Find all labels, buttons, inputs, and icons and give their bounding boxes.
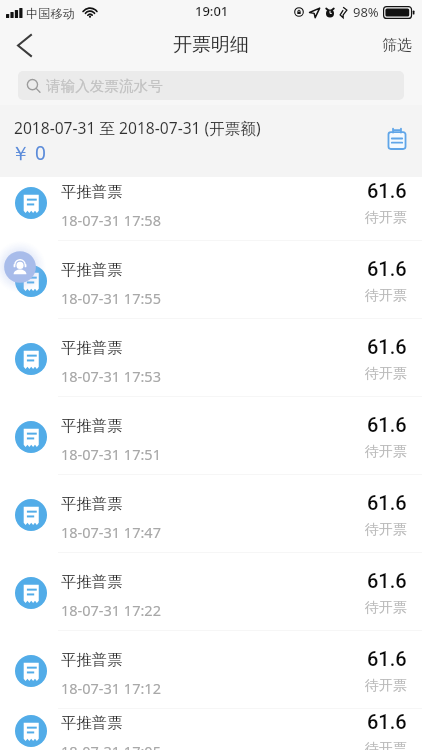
button[interactable]: 平推普票 [0,163,422,240]
staticText: 18-07-31 17:22 [61,600,161,620]
staticText: 61.6 [367,491,407,514]
staticText: 18-07-31 17:05 [61,741,161,750]
staticText: 61.6 [367,647,407,670]
staticText: 平推普票 [61,260,123,279]
staticText: 18-07-31 17:51 [61,444,161,464]
staticText: 18-07-31 17:53 [61,366,161,386]
staticText: 61.6 [367,413,407,436]
button[interactable]: 平推普票 [0,397,422,474]
staticText: 平推普票 [61,338,123,357]
staticText: 61.6 [367,257,407,280]
button[interactable]: 平推普票 [0,319,422,396]
button[interactable]: 平推普票 [0,553,422,630]
staticText: ￥ 0 [11,140,46,166]
staticText: 待开票 [365,599,407,617]
staticText: 待开票 [365,209,407,227]
staticText: 19:01 [195,2,229,20]
staticText: 平推普票 [61,713,123,732]
staticText: 平推普票 [61,572,123,591]
staticText: 待开票 [365,287,407,305]
button[interactable]: 平推普票 [0,241,422,318]
staticText: 待开票 [365,365,407,383]
staticText: 18-07-31 17:47 [61,522,161,542]
staticText: 平推普票 [61,182,123,201]
staticText: 筛选 [382,36,412,55]
staticText: 待开票 [365,521,407,539]
staticText: 中国移动 [26,6,75,21]
button[interactable]: Customer service [0,241,46,293]
staticText: 请输入发票流水号 [46,77,163,95]
button[interactable]: Invoice list [380,122,414,156]
button[interactable]: 平推普票 [0,709,422,750]
staticText: 平推普票 [61,650,123,669]
staticText: 平推普票 [61,416,123,435]
button[interactable]: 平推普票 [0,475,422,552]
button[interactable]: 请输入发票流水号 [18,71,404,100]
staticText: 61.6 [367,335,407,358]
staticText: 61.6 [367,710,407,733]
button[interactable]: 平推普票 [0,631,422,708]
staticText: 待开票 [365,740,407,750]
staticText: 待开票 [365,443,407,461]
staticText: 开票明细 [173,33,249,57]
staticText: 98% [353,3,379,21]
button[interactable]: Back [0,26,48,65]
staticText: 61.6 [367,569,407,592]
staticText: 18-07-31 17:12 [61,678,161,698]
staticText: 待开票 [365,677,407,695]
staticText: 2018-07-31 至 2018-07-31 (开票额) [14,117,261,138]
staticText: 61.6 [367,179,407,202]
staticText: 平推普票 [61,494,123,513]
staticText: 18-07-31 17:55 [61,288,161,308]
staticText: 18-07-31 17:58 [61,210,161,230]
button[interactable]: 筛选 [382,26,412,65]
